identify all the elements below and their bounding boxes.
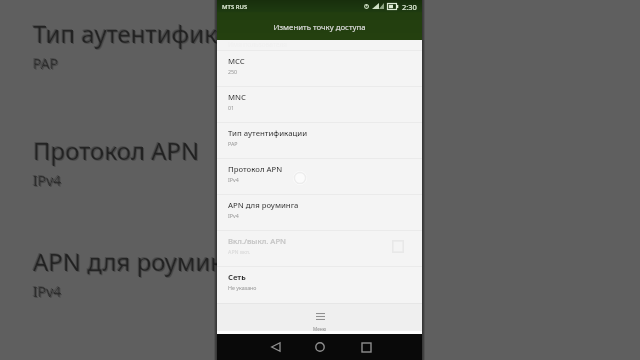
staticText: Протокол APN <box>34 135 201 168</box>
staticText: IPv4 <box>228 176 239 183</box>
staticText: APN для роуминга <box>228 200 299 210</box>
staticText: IPv4 <box>33 171 62 190</box>
staticText: IPv4 <box>33 282 62 301</box>
staticText: IPv4 <box>32 170 61 189</box>
staticText: Тип аутентификации <box>32 16 274 49</box>
staticText: APN для роуминга <box>32 244 248 277</box>
staticText: 2:30 <box>402 2 417 12</box>
button[interactable]: APN для роуминга <box>217 194 422 230</box>
staticText: Изменить точку доступа <box>217 22 422 33</box>
staticText: APN для роуминга <box>34 246 250 279</box>
staticText: Меню <box>313 326 327 332</box>
staticText: IPv4 <box>34 283 63 302</box>
staticText: PAP <box>32 53 58 72</box>
button[interactable]: Back <box>264 336 286 358</box>
staticText: Тип аутентификации <box>34 18 276 51</box>
staticText: Тип аутентификации <box>33 17 275 50</box>
staticText: Тип аутентификации <box>228 128 308 138</box>
staticText: Протокол APN <box>32 133 199 166</box>
staticText: Сеть <box>228 272 246 282</box>
staticText: Протокол APN <box>228 164 283 174</box>
staticText: PAP <box>34 55 60 74</box>
button[interactable]: Recents <box>355 336 377 358</box>
staticText: IPv4 <box>34 172 63 191</box>
button[interactable]: Меню <box>217 303 422 331</box>
staticText: APN для роуминга <box>33 245 249 278</box>
button[interactable]: MNC <box>217 86 422 122</box>
staticText: Протокол APN <box>33 134 200 167</box>
button[interactable]: Тип аутентификации <box>217 122 422 158</box>
button[interactable]: Home <box>309 336 331 358</box>
staticText: MCC <box>228 56 245 66</box>
button[interactable]: Сеть <box>217 266 422 302</box>
staticText: MTS RUS <box>222 3 248 11</box>
staticText: IPv4 <box>228 212 239 219</box>
button[interactable]: Протокол APN <box>217 158 422 194</box>
staticText: MNC <box>228 92 246 102</box>
staticText: 01 <box>228 104 235 111</box>
button[interactable]: Вкл./выкл. APN <box>217 230 422 266</box>
staticText: 250 <box>228 68 238 75</box>
staticText: PAP <box>33 54 59 73</box>
staticText: APN вкл. <box>228 248 251 255</box>
staticText: Не указано <box>228 284 257 291</box>
staticText: Вкл./выкл. APN <box>228 236 287 246</box>
staticText: PAP <box>228 140 238 147</box>
button[interactable]: MCC <box>217 50 422 86</box>
staticText: IPv4 <box>32 281 61 300</box>
